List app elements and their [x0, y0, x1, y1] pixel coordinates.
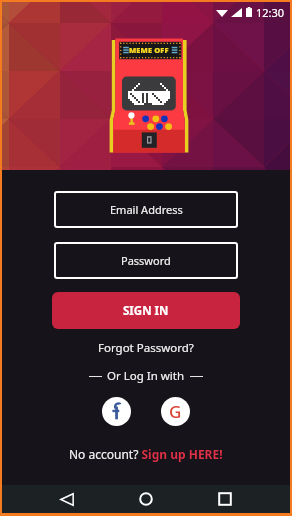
- button[interactable]: Log in with Google: [161, 397, 190, 426]
- button[interactable]: SIGN IN: [52, 292, 240, 329]
- staticText: G: [169, 400, 182, 423]
- staticText: Email Address: [110, 202, 183, 217]
- staticText: Or Log In with: [107, 368, 185, 384]
- staticText: MEME OFF: [129, 45, 169, 55]
- staticText: 12:30: [256, 5, 285, 20]
- staticText: SIGN IN: [123, 303, 169, 319]
- button[interactable]: Home: [132, 485, 160, 513]
- staticText: No account? Sign up HERE!: [69, 446, 223, 462]
- button[interactable]: Log in with Facebook: [102, 397, 131, 426]
- button[interactable]: No account? Sign up HERE!: [63, 444, 229, 464]
- button[interactable]: Back: [53, 485, 81, 513]
- button[interactable]: Email Address: [54, 191, 238, 228]
- button[interactable]: Recent apps: [211, 485, 239, 513]
- button[interactable]: Forgot Password?: [92, 338, 200, 358]
- staticText: Password: [121, 253, 171, 268]
- button[interactable]: Password: [54, 242, 238, 279]
- staticText: Forgot Password?: [98, 340, 194, 356]
